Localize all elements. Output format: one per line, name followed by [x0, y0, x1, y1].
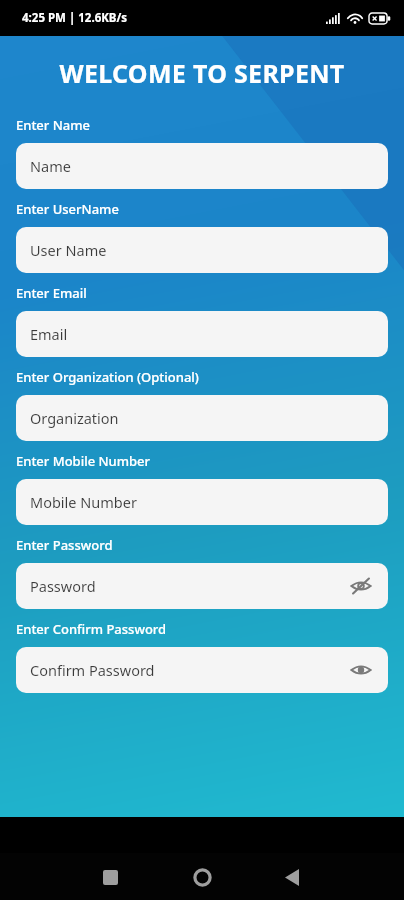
button[interactable]: Mobile Number — [16, 479, 388, 525]
staticText: User Name — [30, 240, 376, 260]
button[interactable]: Organization — [16, 395, 388, 441]
button[interactable]: Back — [270, 855, 314, 899]
staticText: Email — [30, 324, 376, 344]
staticText: Enter Name — [16, 116, 91, 134]
button[interactable]: Confirm Password — [16, 647, 388, 693]
button[interactable]: Show password — [346, 655, 376, 685]
staticText: Enter Organization (Optional) — [16, 368, 199, 386]
button[interactable]: Recent apps — [88, 855, 132, 899]
staticText: Enter Mobile Number — [16, 452, 151, 470]
staticText: WELCOME TO SERPENT — [12, 56, 392, 90]
staticText: Enter Email — [16, 284, 87, 302]
staticText: 4:25 PM | 12.6KB/s — [22, 10, 128, 26]
staticText: Enter Password — [16, 536, 113, 554]
button[interactable]: User Name — [16, 227, 388, 273]
staticText: Enter Confirm Password — [16, 620, 167, 638]
staticText: Name — [30, 156, 376, 176]
button[interactable]: Name — [16, 143, 388, 189]
button[interactable]: Hide password — [346, 571, 376, 601]
staticText: Mobile Number — [30, 492, 376, 512]
button[interactable]: Home — [180, 855, 224, 899]
staticText: Confirm Password — [30, 660, 346, 680]
staticText: Organization — [30, 408, 376, 428]
staticText: Enter UserName — [16, 200, 119, 218]
button[interactable]: Password — [16, 563, 388, 609]
button[interactable]: Email — [16, 311, 388, 357]
staticText: Password — [30, 576, 346, 596]
